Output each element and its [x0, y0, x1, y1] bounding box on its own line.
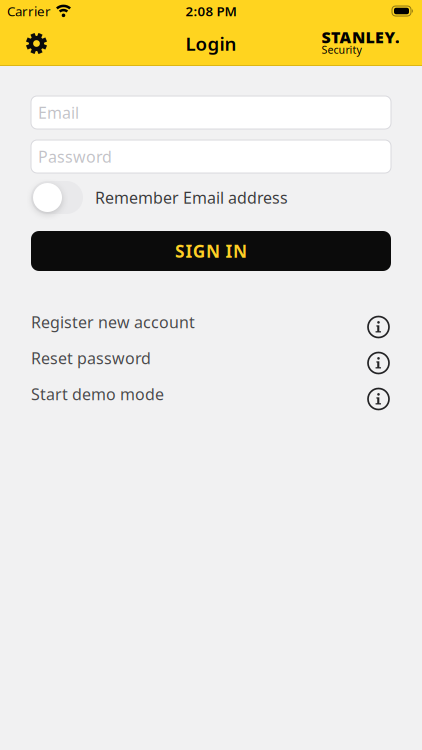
- staticText: Security: [321, 42, 361, 57]
- staticText: Remember Email address: [95, 187, 288, 208]
- staticText: SIGN IN: [175, 239, 247, 262]
- staticText: STANLEY.: [321, 26, 400, 47]
- staticText: Email: [38, 102, 79, 123]
- button[interactable]: Reset password: [0, 340, 422, 376]
- button[interactable]: Start demo mode: [0, 376, 422, 412]
- button[interactable]: Remember Email address: [31, 181, 83, 214]
- staticText: Register new account: [31, 311, 195, 333]
- staticText: Password: [38, 146, 112, 167]
- button[interactable]: Register new account: [0, 304, 422, 340]
- button[interactable]: Settings: [0, 22, 47, 65]
- staticText: Carrier: [7, 2, 51, 20]
- button[interactable]: SIGN IN: [31, 231, 391, 271]
- staticText: Start demo mode: [31, 383, 164, 405]
- staticText: 2:08 PM: [185, 2, 236, 20]
- staticText: Reset password: [31, 347, 151, 369]
- staticText: Login: [185, 31, 236, 56]
